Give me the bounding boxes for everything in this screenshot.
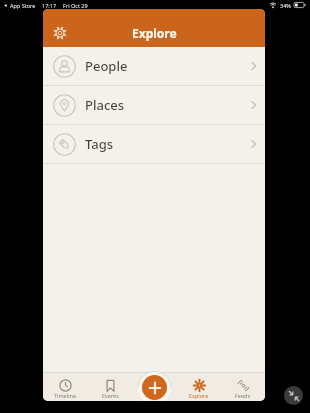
- staticText: 17:17: [42, 2, 57, 9]
- staticText: Explore: [132, 25, 177, 41]
- button[interactable]: People: [43, 47, 265, 86]
- button[interactable]: Events: [88, 372, 133, 401]
- button[interactable]: Places: [43, 86, 265, 125]
- staticText: Fri Oct 29: [63, 2, 88, 9]
- button[interactable]: Timeline: [43, 372, 88, 401]
- staticText: Events: [102, 392, 119, 399]
- staticText: Timeline: [54, 392, 77, 399]
- staticText: Feeds: [235, 392, 251, 399]
- button[interactable]: Feeds: [221, 372, 265, 401]
- staticText: App Store: [10, 2, 36, 9]
- button[interactable]: [142, 375, 167, 400]
- staticText: Places: [85, 96, 125, 114]
- button[interactable]: Tags: [43, 125, 265, 164]
- button[interactable]: Explore: [177, 372, 221, 401]
- staticText: Explore: [189, 392, 209, 399]
- staticText: 34%: [280, 2, 291, 9]
- staticText: People: [85, 57, 128, 75]
- staticText: Tags: [85, 135, 114, 153]
- button[interactable]: [284, 386, 303, 405]
- button[interactable]: [52, 25, 68, 41]
